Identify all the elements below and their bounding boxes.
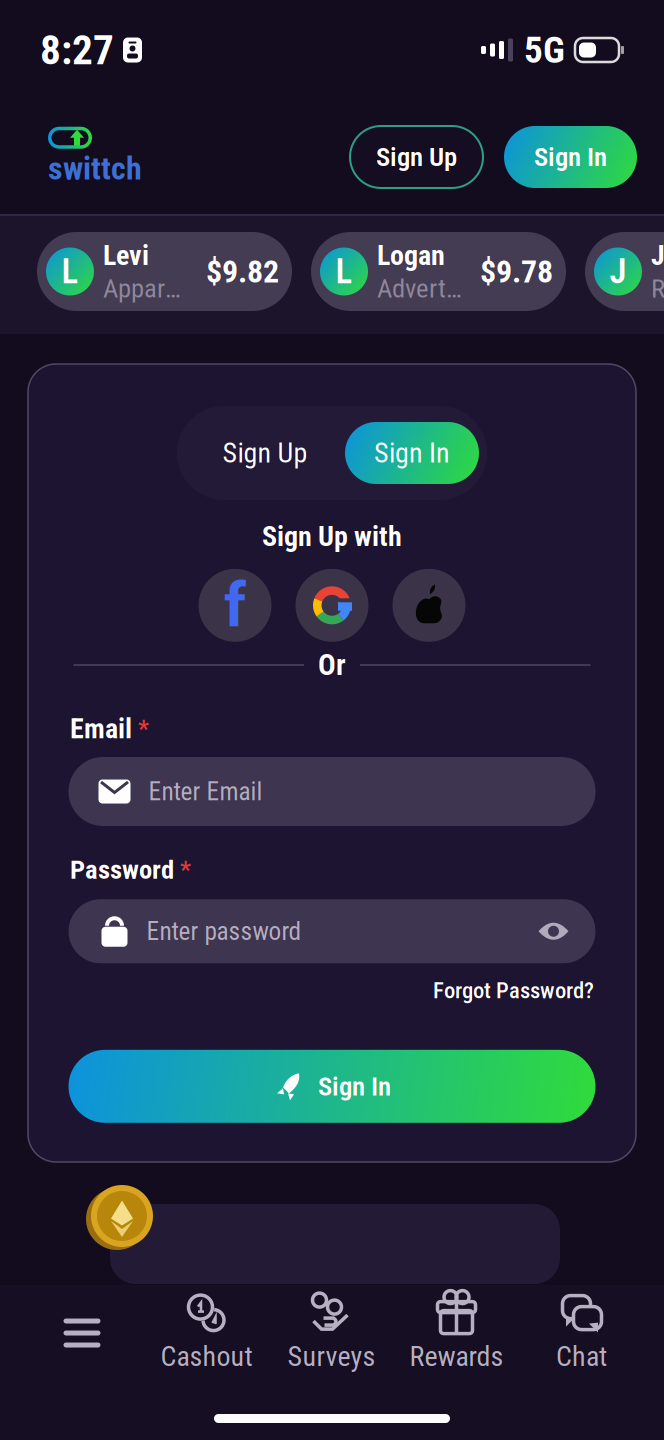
staticText: Sign Up with	[262, 520, 402, 553]
staticText: Surveys	[287, 1340, 375, 1373]
staticText: 5G	[524, 28, 565, 72]
button[interactable]: Show password	[537, 918, 569, 944]
button[interactable]: Cashout	[144, 1285, 269, 1381]
staticText: Sign In	[534, 141, 607, 173]
staticText: Cashout	[160, 1340, 252, 1373]
staticText: Advertising …	[377, 273, 462, 304]
staticText: $9.78	[480, 253, 553, 290]
staticText: Enter password	[146, 916, 301, 946]
button[interactable]: Surveys	[269, 1285, 394, 1381]
button[interactable]: Sign up with Apple	[392, 569, 465, 642]
staticText: Enter Email	[148, 777, 262, 806]
button[interactable]: Sign Up	[350, 126, 483, 188]
staticText: Sign Up	[376, 141, 457, 173]
button[interactable]: Sign Up	[185, 422, 345, 484]
staticText: Levi	[103, 239, 149, 272]
staticText: Or	[318, 648, 346, 682]
button[interactable]: Swittch home	[48, 127, 138, 187]
staticText: Retail Sto…	[651, 273, 664, 304]
button[interactable]: Forgot Password?	[433, 977, 594, 1004]
staticText: f	[224, 569, 246, 641]
staticText: Forgot Password?	[433, 977, 594, 1004]
staticText: Rewards	[409, 1340, 503, 1373]
button[interactable]: Sign up with Facebook	[198, 569, 271, 642]
staticText: Logan	[377, 239, 445, 272]
staticText: Email	[70, 712, 132, 745]
staticText: Sign In	[318, 1071, 391, 1102]
button[interactable]: Sign up with Google	[295, 569, 368, 642]
button[interactable]: Rewards	[394, 1285, 519, 1381]
staticText: *	[174, 856, 191, 884]
staticText: Sign Up	[222, 437, 307, 469]
button[interactable]: Sign In	[345, 422, 479, 484]
button[interactable]: Sign In	[504, 126, 637, 188]
staticText: L	[61, 251, 78, 292]
staticText: 8:27	[40, 26, 114, 74]
staticText: Chat	[556, 1340, 607, 1373]
staticText: Jord	[651, 239, 664, 272]
staticText: Apparel Sel…	[103, 273, 188, 304]
staticText: swittch	[48, 150, 142, 187]
button[interactable]: Chat	[519, 1285, 644, 1381]
staticText: $9.82	[206, 253, 279, 290]
staticText: L	[335, 251, 352, 292]
staticText: J	[609, 251, 626, 292]
staticText: Password	[70, 854, 174, 885]
staticText: *	[132, 714, 149, 743]
button[interactable]: Sign In	[68, 1050, 595, 1123]
staticText: Sign In	[374, 437, 450, 469]
button[interactable]: Menu	[20, 1285, 144, 1381]
